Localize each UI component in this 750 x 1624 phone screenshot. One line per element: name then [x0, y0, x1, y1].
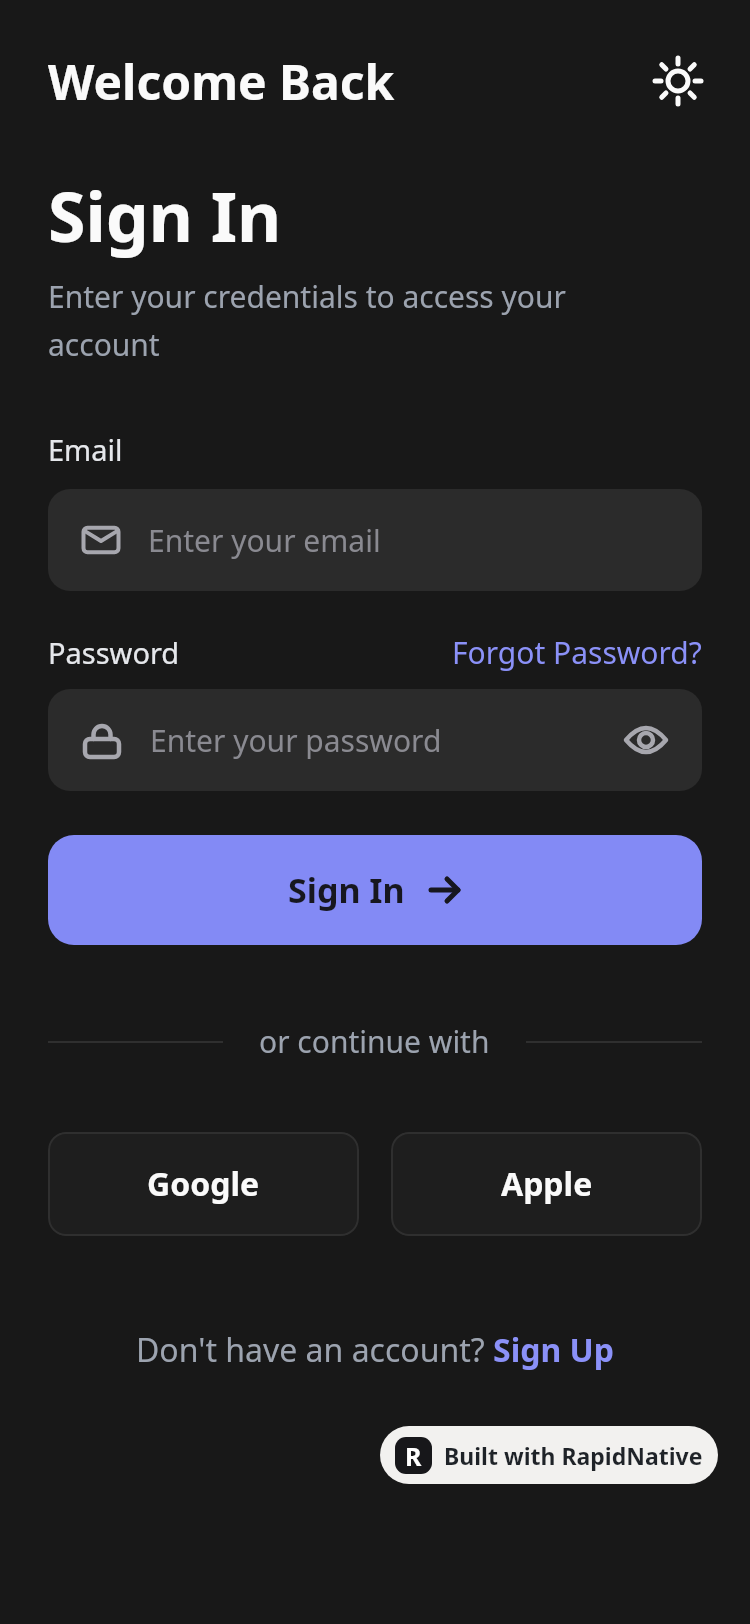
- staticText: R: [405, 1439, 422, 1473]
- button[interactable]: [624, 723, 668, 757]
- staticText: Sign In: [288, 867, 405, 913]
- staticText: Welcome Back: [48, 49, 395, 114]
- staticText: Email: [48, 430, 123, 469]
- button[interactable]: Sign In: [48, 835, 702, 945]
- staticText: Built with RapidNative: [444, 1440, 703, 1471]
- staticText: Apple: [501, 1162, 593, 1206]
- staticText: or continue with: [259, 1021, 490, 1062]
- staticText: Password: [48, 633, 180, 672]
- button[interactable]: Google: [48, 1132, 359, 1236]
- staticText: Forgot Password?: [452, 632, 702, 673]
- staticText: Sign In: [48, 169, 282, 262]
- staticText: Enter your email: [148, 520, 381, 561]
- button[interactable]: Apple: [391, 1132, 702, 1236]
- staticText: Sign Up: [493, 1328, 614, 1372]
- button[interactable]: Forgot Password?: [452, 632, 702, 673]
- button[interactable]: Sign Up: [493, 1328, 614, 1372]
- staticText: Don't have an account?: [136, 1328, 493, 1372]
- button[interactable]: Enter your email: [48, 489, 702, 591]
- button[interactable]: R: [380, 1426, 718, 1484]
- staticText: Enter your password: [150, 720, 442, 761]
- button[interactable]: [654, 57, 702, 105]
- button[interactable]: Enter your password: [48, 689, 702, 791]
- staticText: Google: [147, 1162, 260, 1206]
- staticText: Enter your credentials to access your ac…: [48, 276, 566, 364]
